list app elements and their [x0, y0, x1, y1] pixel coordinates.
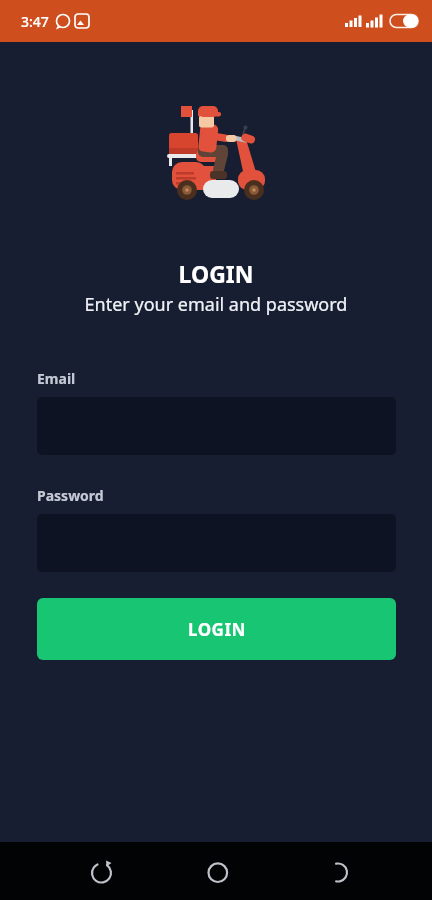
- staticText: 3:47: [21, 12, 49, 31]
- button[interactable]: [292, 842, 382, 900]
- staticText: LOGIN: [0, 258, 432, 289]
- staticText: Email: [37, 369, 76, 388]
- staticText: Enter your email and password: [0, 292, 432, 317]
- button[interactable]: LOGIN: [37, 598, 396, 660]
- staticText: Password: [37, 486, 104, 505]
- button[interactable]: [171, 842, 261, 900]
- staticText: LOGIN: [188, 618, 246, 641]
- button[interactable]: [60, 842, 150, 900]
